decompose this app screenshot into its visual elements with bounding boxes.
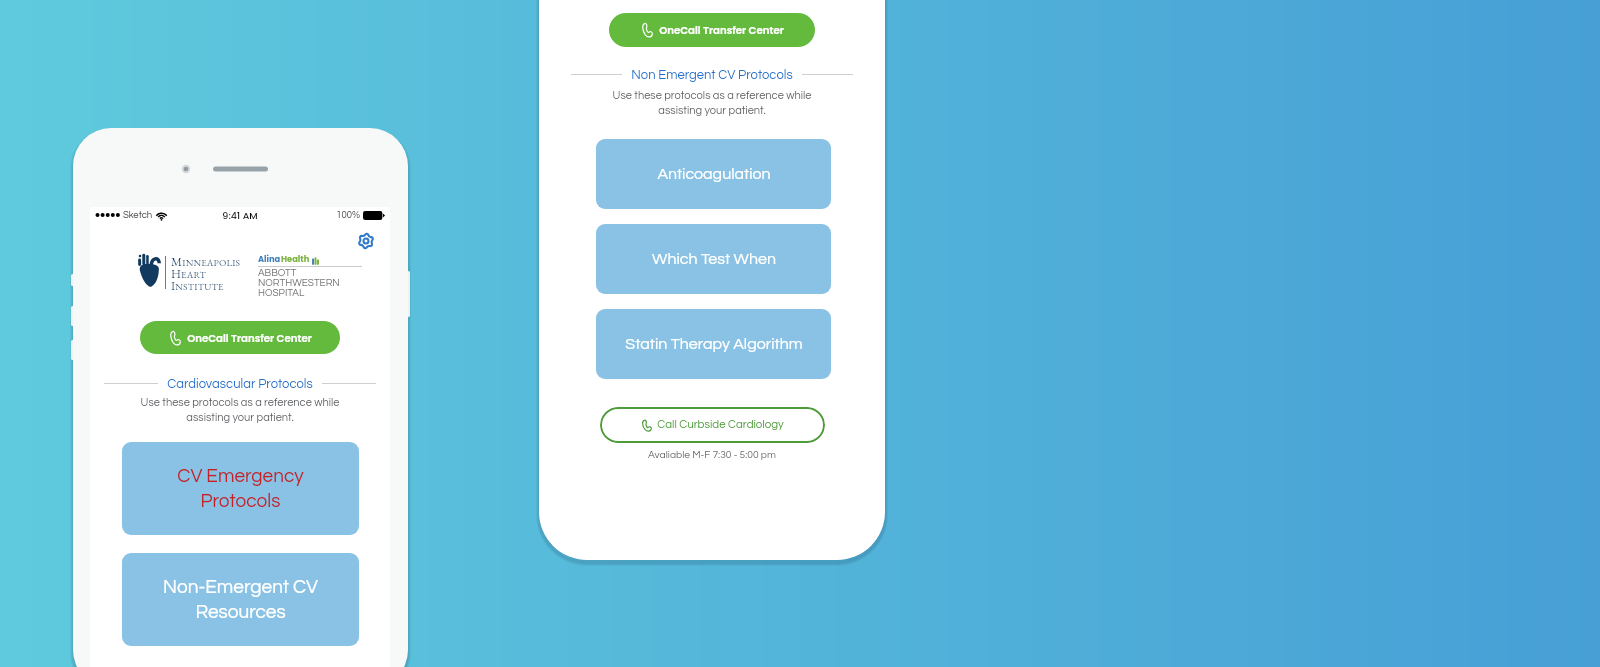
staticText: Cardiovascular Protocols [167, 377, 313, 390]
staticText: Avaliable M-F 7:30 - 5:00 pm [557, 450, 867, 461]
staticText: MINNEAPOLIS HEART INSTITUTE [171, 254, 241, 294]
button[interactable]: Call Curbside Cardiology [600, 407, 825, 443]
staticText: Statin Therapy Algorithm [625, 336, 803, 352]
button[interactable]: Which Test When [596, 224, 831, 294]
staticText: Use these protocols as a reference while… [90, 397, 390, 423]
button[interactable]: OneCall Transfer Center [609, 13, 815, 47]
staticText: Health [281, 253, 310, 265]
staticText: Use these protocols as a reference while… [557, 90, 867, 116]
staticText: OneCall Transfer Center [187, 331, 312, 345]
button[interactable]: CV Emergency Protocols [122, 442, 359, 535]
button[interactable]: Statin Therapy Algorithm [596, 309, 831, 379]
staticText: ABBOTT [258, 268, 297, 278]
staticText: CV Emergency Protocols [177, 466, 304, 511]
staticText: 9:41 AM [222, 209, 258, 222]
staticText: 100% [336, 210, 360, 220]
staticText: Alina [258, 253, 281, 265]
staticText: HOSPITAL [258, 288, 305, 298]
button[interactable]: Anticoagulation [596, 139, 831, 209]
button[interactable]: Non-Emergent CV Resources [122, 553, 359, 646]
staticText: Non Emergent CV Protocols [631, 68, 793, 81]
staticText: NORTHWESTERN [258, 278, 340, 288]
staticText: Which Test When [652, 251, 776, 267]
staticText: Non-Emergent CV Resources [163, 577, 318, 622]
button[interactable]: Settings [358, 233, 374, 249]
staticText: Anticoagulation [657, 166, 771, 182]
button[interactable]: OneCall Transfer Center [140, 321, 340, 354]
staticText: Call Curbside Cardiology [657, 419, 784, 431]
staticText: Sketch [123, 210, 153, 220]
staticText: OneCall Transfer Center [659, 23, 784, 37]
